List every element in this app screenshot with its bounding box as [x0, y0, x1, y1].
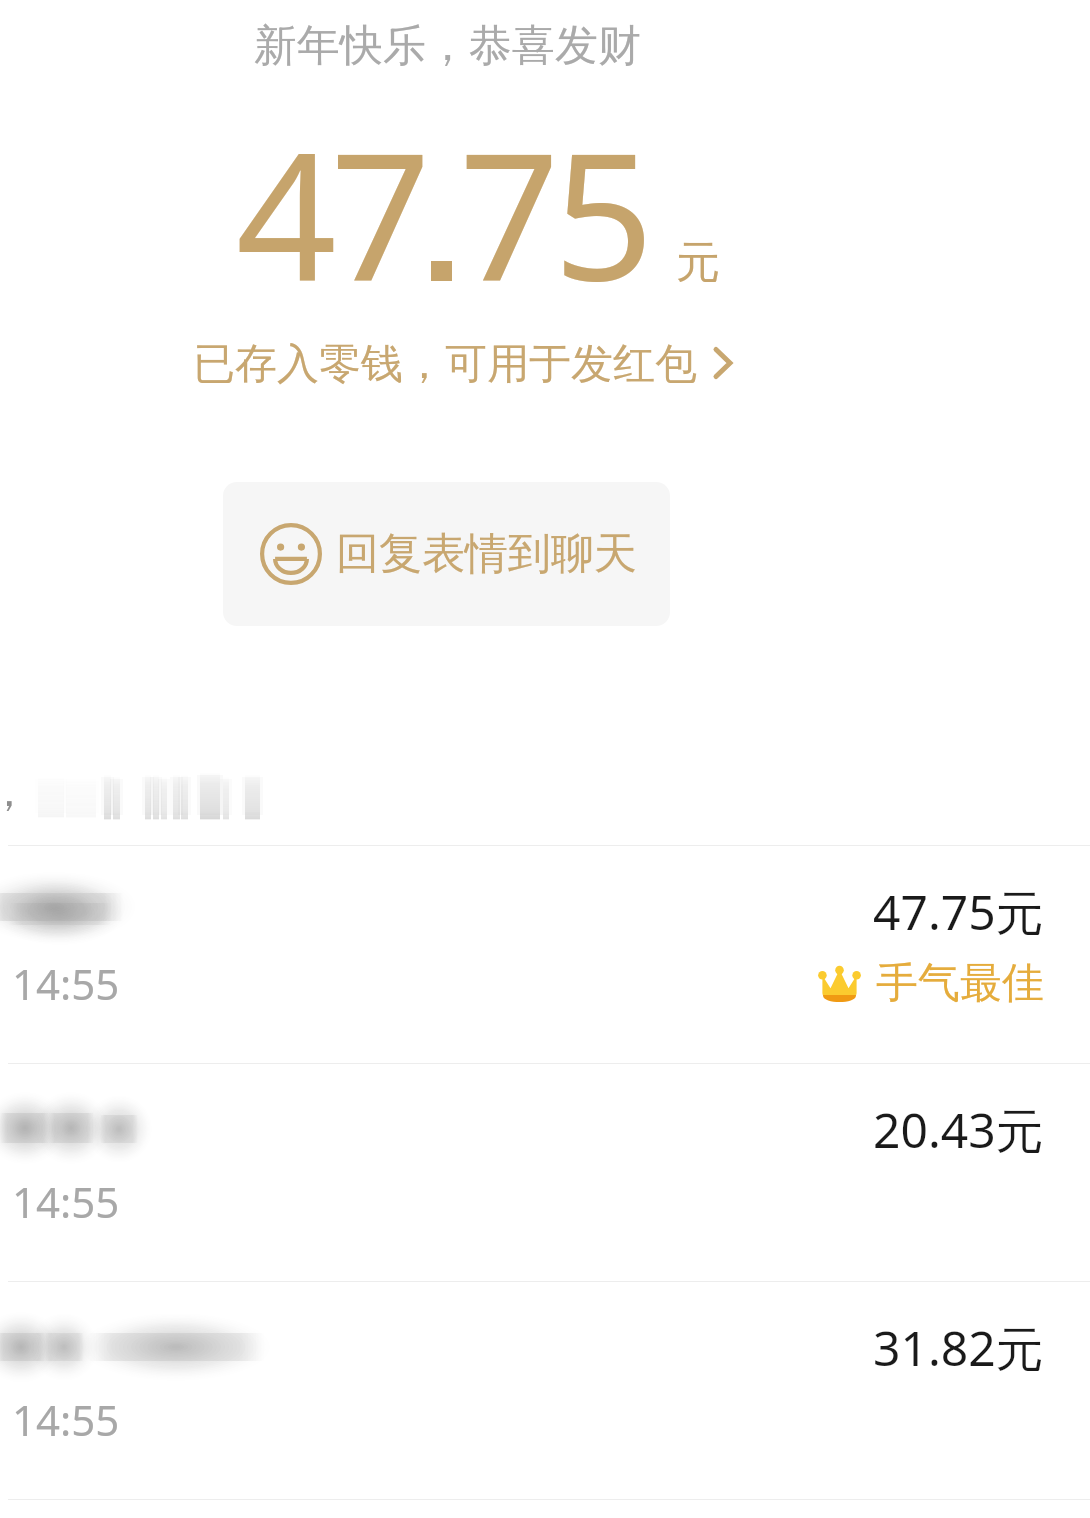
staticText: 14:55: [12, 955, 120, 1012]
staticText: 回复表情到聊天: [336, 527, 637, 581]
staticText: 元: [676, 235, 720, 290]
button[interactable]: 14:55: [0, 1282, 1090, 1499]
staticText: ，: [0, 766, 30, 819]
button[interactable]: 14:55: [0, 1064, 1090, 1281]
staticText: 已存入零钱，可用于发红包: [193, 338, 697, 391]
staticText: 新年快乐，恭喜发财: [254, 19, 641, 73]
button[interactable]: 已存入零钱，可用于发红包: [193, 338, 737, 391]
other: Reply with a sticker: [259, 522, 323, 586]
button[interactable]: 14:55: [0, 846, 1090, 1063]
staticText: 14:55: [12, 1173, 120, 1230]
staticText: 20.43元: [873, 1097, 1044, 1163]
staticText: 75: [459, 92, 648, 332]
button[interactable]: Reply with a sticker: [223, 482, 670, 626]
staticText: 14:55: [12, 1391, 120, 1448]
staticText: 47.75元: [873, 879, 1044, 945]
staticText: 47: [236, 92, 425, 332]
staticText: 31.82元: [873, 1315, 1044, 1381]
staticText: 手气最佳: [876, 957, 1044, 1010]
